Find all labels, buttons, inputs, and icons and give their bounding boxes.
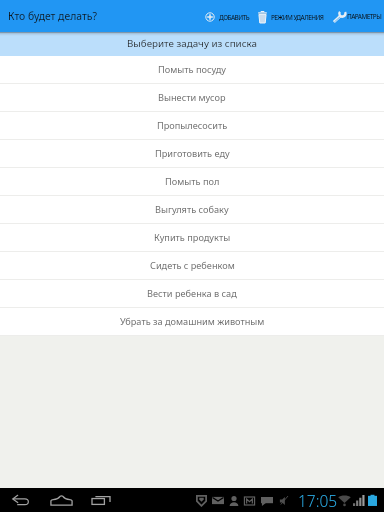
button[interactable]: Выгулять собаку [0, 196, 384, 224]
staticText: ДОБАВИТЬ [219, 13, 250, 22]
staticText: Вести ребенка в сад [147, 287, 237, 300]
staticText: 17:05 [298, 490, 338, 511]
button[interactable]: Убрать за домашним животным [0, 308, 384, 336]
staticText: Приготовить еду [155, 147, 230, 160]
staticText: Помыть пол [165, 175, 220, 188]
button[interactable]: Home [45, 488, 77, 512]
staticText: Выберите задачу из списка [127, 37, 257, 50]
button[interactable]: Сидеть с ребенком [0, 252, 384, 280]
button[interactable]: Вынести мусор [0, 84, 384, 112]
button[interactable]: ДОБАВИТЬ [205, 12, 250, 22]
staticText: Купить продукты [154, 231, 231, 244]
button[interactable]: РЕЖИМ УДАЛЕНИЯ [258, 11, 324, 23]
button[interactable]: ПАРАМЕТРЫ [333, 10, 382, 23]
button[interactable]: Back [5, 488, 37, 512]
staticText: Сидеть с ребенком [150, 259, 235, 272]
staticText: ПАРАМЕТРЫ [347, 12, 382, 21]
button[interactable]: Помыть пол [0, 168, 384, 196]
staticText: РЕЖИМ УДАЛЕНИЯ [271, 13, 324, 22]
staticText: Кто будет делать? [8, 9, 97, 23]
staticText: Выгулять собаку [155, 203, 229, 216]
button[interactable]: Recents [85, 488, 117, 512]
staticText: Убрать за домашним животным [120, 315, 265, 328]
button[interactable]: Помыть посуду [0, 56, 384, 84]
button[interactable]: Вести ребенка в сад [0, 280, 384, 308]
staticText: Вынести мусор [158, 91, 226, 104]
button[interactable]: Приготовить еду [0, 140, 384, 168]
button[interactable]: Купить продукты [0, 224, 384, 252]
button[interactable]: Пропылесосить [0, 112, 384, 140]
staticText: Помыть посуду [158, 63, 226, 76]
staticText: Пропылесосить [157, 119, 228, 132]
button[interactable]: Выберите задачу из списка [0, 32, 384, 56]
